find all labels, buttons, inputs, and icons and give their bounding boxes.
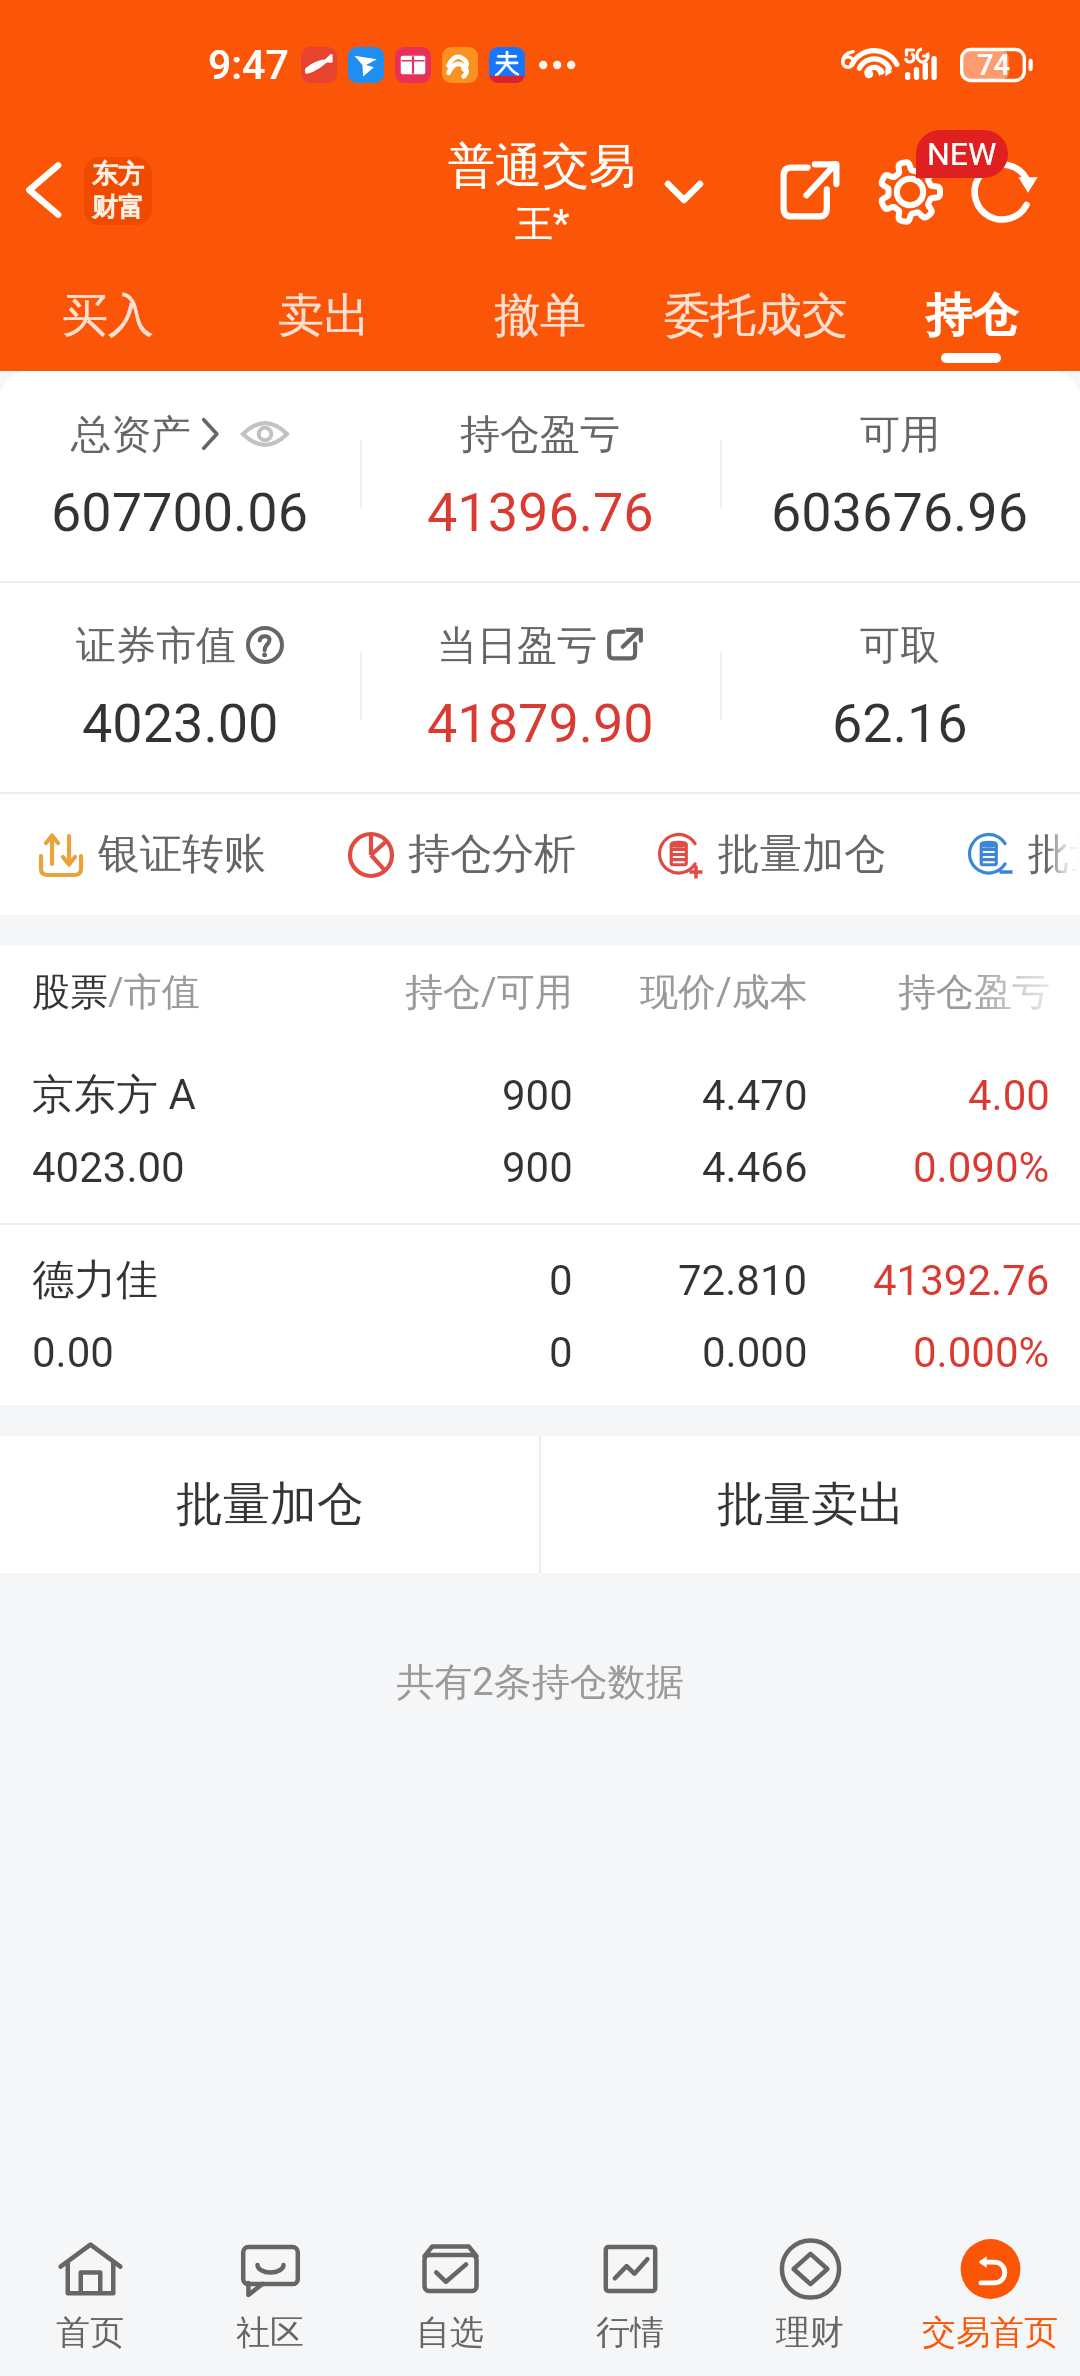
button[interactable]: Settings bbox=[862, 144, 958, 240]
staticText: 持仓/可用 bbox=[405, 968, 573, 1016]
button[interactable]: 委托成交 bbox=[648, 266, 864, 366]
staticText: 900 bbox=[502, 1143, 573, 1192]
button[interactable]: 行情 bbox=[540, 2180, 720, 2376]
staticText: 0 bbox=[549, 1328, 573, 1377]
staticText: 社区 bbox=[236, 2311, 304, 2354]
staticText: 41392.76 bbox=[873, 1256, 1050, 1305]
staticText: 74 bbox=[977, 48, 1010, 82]
staticText: 理财 bbox=[776, 2311, 844, 2354]
button[interactable]: 总资产 bbox=[0, 371, 360, 581]
button[interactable]: 德力佳 bbox=[0, 1225, 1080, 1405]
button[interactable]: 持仓 bbox=[864, 266, 1080, 366]
staticText: 607700.06 bbox=[51, 481, 309, 544]
button[interactable]: 证券市值 bbox=[0, 583, 360, 792]
staticText: 持仓盈亏 bbox=[898, 968, 1050, 1016]
staticText: 持仓 bbox=[926, 287, 1018, 345]
staticText: 603676.96 bbox=[771, 481, 1029, 544]
staticText: 卖出 bbox=[278, 287, 370, 345]
button[interactable]: 持仓盈亏 bbox=[360, 371, 720, 581]
staticText: 王* bbox=[515, 200, 570, 247]
button[interactable]: Open external bbox=[762, 144, 858, 240]
button[interactable]: 首页 bbox=[0, 2180, 180, 2376]
staticText: 0 bbox=[549, 1256, 573, 1305]
staticText: 委托成交 bbox=[664, 287, 848, 345]
staticText: 4023.00 bbox=[32, 1143, 185, 1192]
button[interactable]: 可用 bbox=[720, 371, 1080, 581]
staticText: 4023.00 bbox=[82, 692, 279, 755]
staticText: 批量 bbox=[1028, 828, 1080, 881]
staticText: 41879.90 bbox=[427, 692, 654, 755]
staticText: 4.00 bbox=[968, 1071, 1050, 1120]
button[interactable]: 可取 bbox=[720, 583, 1080, 792]
button[interactable]: 交易首页 bbox=[900, 2180, 1080, 2376]
button[interactable]: Refresh bbox=[958, 144, 1054, 240]
staticText: 现价/成本 bbox=[640, 968, 808, 1016]
staticText: 证券市值 bbox=[76, 620, 236, 670]
button[interactable]: 撤单 bbox=[432, 266, 648, 366]
button[interactable]: Switch account bbox=[642, 150, 726, 234]
staticText: 900 bbox=[502, 1071, 573, 1120]
staticText: 共有2条持仓数据 bbox=[0, 1658, 1080, 1706]
staticText: 当日盈亏 bbox=[437, 620, 597, 670]
staticText: 股票 bbox=[32, 968, 108, 1016]
button[interactable]: 理财 bbox=[720, 2180, 900, 2376]
staticText: /市值 bbox=[108, 968, 200, 1016]
staticText: 京东方 A bbox=[32, 1069, 196, 1122]
staticText: 批量卖出 bbox=[717, 1475, 905, 1534]
staticText: 0.00 bbox=[32, 1328, 114, 1377]
staticText: 批量加仓 bbox=[176, 1475, 364, 1534]
staticText: 持仓分析 bbox=[408, 828, 576, 881]
button[interactable]: 当日盈亏 bbox=[360, 583, 720, 792]
staticText: 9:47 bbox=[208, 41, 289, 89]
button[interactable]: 批量加仓 bbox=[0, 1436, 539, 1573]
staticText: 总资产 bbox=[71, 409, 191, 459]
button[interactable]: 买入 bbox=[0, 266, 216, 366]
staticText: 62.16 bbox=[832, 692, 968, 755]
staticText: 普通交易 bbox=[448, 137, 636, 196]
button[interactable]: Back bbox=[0, 147, 86, 233]
staticText: 财富 bbox=[92, 191, 144, 224]
staticText: 41396.76 bbox=[427, 481, 654, 544]
staticText: 0.000 bbox=[702, 1328, 808, 1377]
button[interactable]: 批量 bbox=[966, 828, 1080, 881]
staticText: 4.470 bbox=[702, 1071, 808, 1120]
staticText: 交易首页 bbox=[922, 2311, 1058, 2354]
button[interactable]: 批量加仓 bbox=[656, 828, 886, 881]
staticText: 行情 bbox=[596, 2311, 664, 2354]
button[interactable]: 社区 bbox=[180, 2180, 360, 2376]
staticText: 0.000% bbox=[913, 1328, 1050, 1377]
button[interactable]: 京东方 A bbox=[0, 1038, 1080, 1223]
staticText: 可取 bbox=[860, 620, 940, 670]
staticText: 批量加仓 bbox=[718, 828, 886, 881]
staticText: 72.810 bbox=[678, 1256, 808, 1305]
staticText: 自选 bbox=[416, 2311, 484, 2354]
staticText: 持仓盈亏 bbox=[460, 409, 620, 459]
staticText: 0.090% bbox=[913, 1143, 1050, 1192]
staticText: 东方 bbox=[92, 158, 144, 191]
staticText: 买入 bbox=[62, 287, 154, 345]
staticText: 德力佳 bbox=[32, 1254, 158, 1307]
button[interactable]: 卖出 bbox=[216, 266, 432, 366]
staticText: 撤单 bbox=[494, 287, 586, 345]
staticText: 4.466 bbox=[702, 1143, 808, 1192]
button[interactable]: East Money bbox=[84, 157, 152, 225]
staticText: 首页 bbox=[56, 2311, 124, 2354]
button[interactable]: 批量卖出 bbox=[541, 1436, 1080, 1573]
staticText: 银证转账 bbox=[98, 828, 266, 881]
staticText: 可用 bbox=[860, 409, 940, 459]
staticText: NEW bbox=[927, 135, 997, 173]
button[interactable]: 自选 bbox=[360, 2180, 540, 2376]
button[interactable]: 银证转账 bbox=[36, 828, 266, 881]
button[interactable]: 持仓分析 bbox=[346, 828, 576, 881]
